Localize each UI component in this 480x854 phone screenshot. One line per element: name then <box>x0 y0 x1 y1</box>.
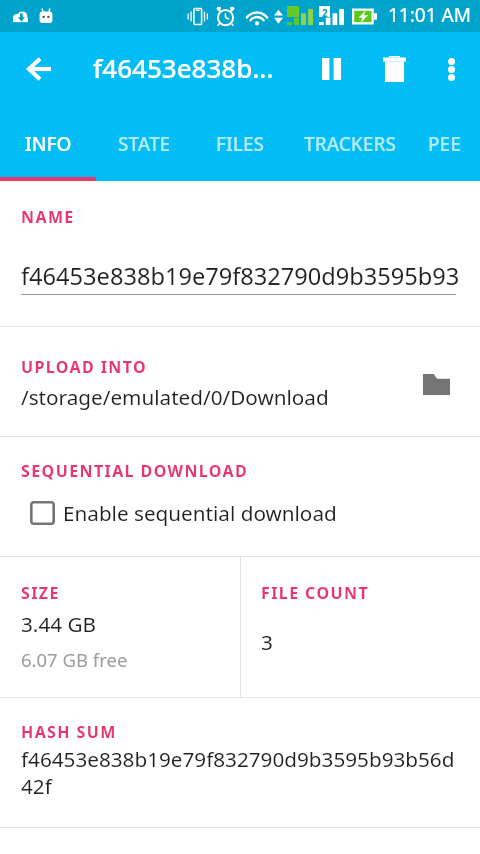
button[interactable] <box>0 327 480 436</box>
staticText: f46453e838b19e79f832790d9b3595b93 <box>21 260 460 292</box>
staticText: 11:01 AM <box>388 2 471 28</box>
staticText: /storage/emulated/0/Download <box>21 383 329 411</box>
staticText: 3.44 GB <box>21 610 96 638</box>
button[interactable]: Enable sequential download <box>21 493 341 532</box>
button[interactable]: FILES <box>192 112 288 176</box>
staticText: SEQUENTIAL DOWNLOAD <box>21 460 249 482</box>
staticText: f46453e838b... <box>93 50 274 85</box>
staticText: PEERS <box>428 131 464 157</box>
staticText: 2 <box>322 6 328 17</box>
staticText: f46453e838b19e79f832790d9b3595b93b56d42f <box>21 745 464 800</box>
staticText: 6.07 GB free <box>21 647 128 672</box>
staticText: INFO <box>25 131 72 157</box>
button[interactable]: More options <box>428 46 474 92</box>
button[interactable]: TRACKERS <box>288 112 412 176</box>
staticText: HASH SUM <box>21 721 117 743</box>
staticText: UPLOAD INTO <box>21 356 148 378</box>
button[interactable]: Back <box>16 46 62 92</box>
button[interactable]: Delete <box>371 46 417 92</box>
staticText: NAME <box>21 206 75 228</box>
staticText: TRACKERS <box>304 131 396 157</box>
staticText: Enable sequential download <box>63 499 337 527</box>
staticText: STATE <box>118 131 171 157</box>
button[interactable]: INFO <box>0 112 96 176</box>
button[interactable]: PEERS <box>412 112 480 176</box>
button[interactable]: STATE <box>96 112 192 176</box>
staticText: SIZE <box>21 582 60 604</box>
staticText: 3 <box>261 628 273 656</box>
staticText: FILES <box>216 131 264 157</box>
button[interactable]: Pause <box>308 46 354 92</box>
staticText: FILE COUNT <box>261 582 370 604</box>
